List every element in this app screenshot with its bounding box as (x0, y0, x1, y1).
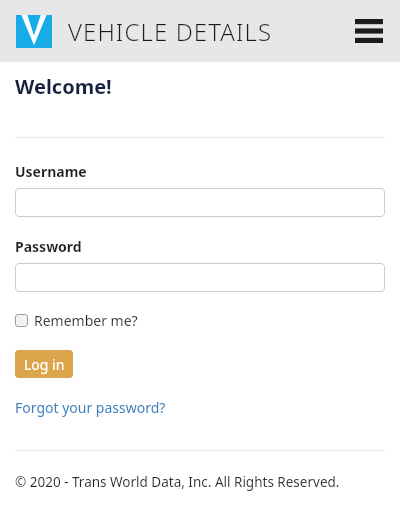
staticText: © 2020 - Trans World Data, Inc. All Righ… (15, 473, 340, 491)
button[interactable]: Forgot your password? (15, 398, 166, 417)
button[interactable]: Menu (351, 13, 387, 49)
staticText: Username (15, 162, 87, 181)
staticText: Remember me? (34, 311, 138, 330)
staticText: Welcome! (15, 73, 112, 100)
button[interactable]: Username input (15, 188, 385, 217)
button[interactable]: Password input (15, 263, 385, 292)
staticText: Password (15, 237, 82, 256)
button[interactable]: Remember me? (15, 311, 138, 330)
staticText: Log in (24, 355, 65, 374)
button[interactable]: Log in (15, 350, 73, 378)
staticText: Forgot your password? (15, 398, 166, 417)
button[interactable]: Vehicle Details home (16, 15, 52, 48)
staticText: VEHICLE DETAILS (68, 15, 273, 48)
